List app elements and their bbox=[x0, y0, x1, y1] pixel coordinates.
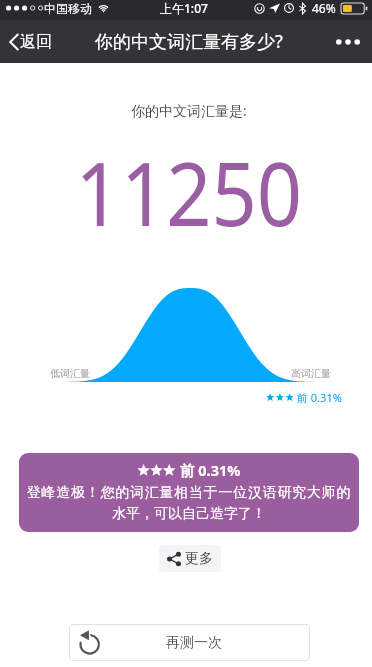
button[interactable]: 更多 bbox=[159, 545, 221, 572]
staticText: 高词汇量 bbox=[291, 367, 331, 380]
staticText: 再测一次 bbox=[166, 634, 222, 652]
staticText: 46% bbox=[312, 0, 336, 16]
staticText: 前 0.31% bbox=[180, 460, 241, 480]
staticText: 返回 bbox=[20, 32, 52, 52]
button[interactable]: 返回 bbox=[0, 26, 58, 58]
button[interactable]: 再测一次 bbox=[69, 624, 310, 661]
staticText: 更多 bbox=[185, 550, 213, 568]
button[interactable]: More options bbox=[324, 29, 372, 55]
staticText: 水平，可以自己造字了！ bbox=[19, 505, 359, 523]
staticText: 中国移动 bbox=[44, 1, 92, 16]
staticText: 前 0.31% bbox=[297, 390, 342, 405]
staticText: 你的中文词汇量是: bbox=[131, 101, 247, 120]
staticText: 11250 bbox=[76, 132, 302, 252]
button[interactable]: 前 0.31% bbox=[19, 453, 359, 532]
staticText: 登峰造极！您的词汇量相当于一位汉语研究大师的 bbox=[19, 484, 359, 502]
staticText: 上午1:07 bbox=[160, 0, 208, 16]
staticText: 你的中文词汇量有多少? bbox=[95, 29, 283, 54]
staticText: 低词汇量 bbox=[50, 367, 90, 380]
